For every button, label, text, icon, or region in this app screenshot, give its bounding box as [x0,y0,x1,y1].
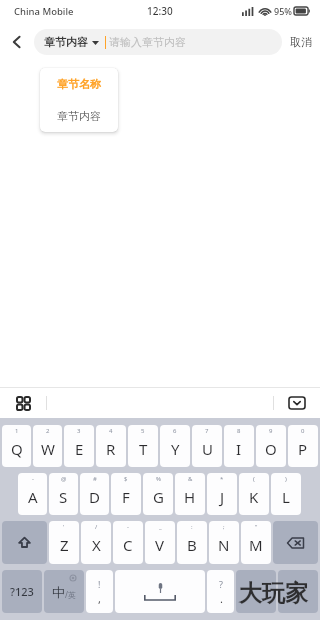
button[interactable]: ? [207,570,234,613]
staticText: 取消 [290,35,312,49]
staticText: China Mobile [14,5,74,18]
button[interactable]: & [175,473,205,515]
staticText: F [122,487,130,507]
button[interactable]: 9 [256,425,286,467]
button[interactable]: : [177,521,207,564]
staticText: R [106,439,116,459]
staticText: K [249,487,259,507]
staticText: G [153,487,164,507]
staticText: 3 [77,427,81,435]
button[interactable]: $ [111,473,141,515]
staticText: / [95,523,98,531]
button[interactable]: Space [115,570,205,613]
button[interactable]: Emoji [236,570,276,613]
staticText: C [123,535,133,555]
staticText: $ [124,475,128,483]
button[interactable]: 6 [160,425,190,467]
staticText: V [155,535,165,555]
staticText: D [89,487,100,507]
button[interactable]: 章节名称 [40,68,118,100]
staticText: T [139,439,148,459]
staticText: 9 [269,427,273,435]
staticText: X [92,535,101,555]
button[interactable]: Backspace [273,521,318,564]
staticText: ! [98,578,101,590]
staticText: 7 [205,427,209,435]
staticText: * [220,475,224,483]
staticText: ' [63,523,65,531]
button[interactable]: Keyboard panels [12,392,34,414]
staticText: Y [171,439,180,459]
button[interactable]: @ [49,473,78,515]
button[interactable]: 5 [128,425,158,467]
staticText: - [127,523,129,531]
button[interactable]: / [81,521,111,564]
button[interactable]: # [80,473,109,515]
button[interactable]: ) [271,473,301,515]
staticText: W [41,439,55,459]
button[interactable]: _ [145,521,175,564]
button[interactable]: 4 [96,425,126,467]
button[interactable]: 章节内容 [40,100,118,132]
staticText: 2 [46,427,50,435]
button[interactable]: Back [0,22,34,62]
staticText: ; [223,523,225,531]
staticText: ?123 [10,584,34,599]
staticText: # [93,475,97,483]
staticText: @ [61,475,67,483]
staticText: % [156,475,161,483]
button[interactable]: 3 [64,425,94,467]
button[interactable]: - [18,473,47,515]
button[interactable]: 中 [44,570,84,613]
staticText: 中 [52,584,65,600]
staticText: L [282,487,290,507]
button[interactable]: - [113,521,143,564]
staticText: B [187,535,197,555]
staticText: . [220,591,223,606]
staticText: U [202,439,213,459]
staticText: 请输入章节内容 [109,35,186,49]
staticText: A [28,487,38,507]
staticText: 6 [173,427,177,435]
button[interactable]: ! [86,570,113,613]
staticText: Z [60,535,69,555]
button[interactable]: 8 [224,425,254,467]
staticText: M [249,535,263,555]
button[interactable]: Enter [278,570,318,613]
staticText: _ [159,523,162,531]
button[interactable]: " [241,521,271,564]
staticText: : [191,523,193,531]
staticText: I [236,439,242,459]
button[interactable]: ' [49,521,79,564]
button[interactable]: 取消 [290,35,312,49]
staticText: 大玩家 [239,579,308,608]
staticText: 12:30 [147,4,173,18]
staticText: 5 [141,427,145,435]
button[interactable]: % [143,473,173,515]
staticText: ? [219,578,223,590]
staticText: 章节名称 [57,77,101,91]
staticText: 4 [109,427,113,435]
staticText: 1 [15,427,19,435]
button[interactable]: ?123 [2,570,42,613]
button[interactable]: 0 [288,425,318,467]
staticText: 8 [237,427,241,435]
button[interactable]: Hide keyboard [286,392,308,414]
button[interactable]: 7 [192,425,222,467]
staticText: N [218,535,230,555]
staticText: 章节内容 [44,35,88,49]
staticText: ( [253,475,255,483]
button[interactable]: ( [239,473,269,515]
staticText: 章节内容 [57,109,101,123]
staticText: E [75,439,84,459]
button[interactable]: ; [209,521,239,564]
button[interactable]: 2 [33,425,62,467]
button[interactable]: Shift [2,521,47,564]
staticText: J [220,487,225,507]
staticText: 0 [301,427,305,435]
button[interactable]: * [207,473,237,515]
staticText: 95% [274,5,292,17]
staticText: P [298,439,308,459]
button[interactable]: 1 [2,425,31,467]
button[interactable]: 章节内容 [44,29,99,55]
